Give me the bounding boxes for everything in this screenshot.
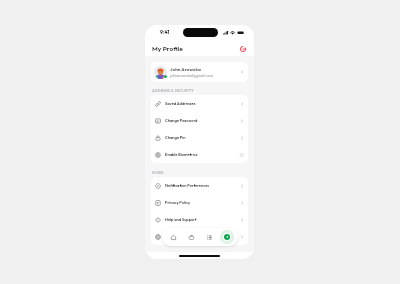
staticText: MORE: [152, 170, 164, 175]
staticText: My Profile: [152, 44, 183, 53]
staticText: Enable Biometrics: [165, 152, 198, 157]
button[interactable]: Enable Biometrics: [151, 146, 248, 163]
button[interactable]: Enable biometrics toggle: [236, 153, 244, 157]
staticText: johnarowoka1@gmail.com: [170, 73, 214, 78]
staticText: 9:41: [160, 29, 170, 35]
button[interactable]: Transactions: [202, 230, 216, 244]
button[interactable]: Terms of Service: [151, 228, 248, 245]
staticText: Privacy Policy: [165, 200, 191, 205]
button[interactable]: Log out: [237, 43, 248, 54]
button[interactable]: Profile: [220, 230, 234, 244]
button[interactable]: Privacy Policy: [151, 194, 248, 211]
button[interactable]: Saved Addresses: [151, 95, 248, 112]
button[interactable]: Notification Preferences: [151, 177, 248, 194]
staticText: Change Pin: [165, 135, 186, 140]
button[interactable]: Change Pin: [151, 129, 248, 146]
button[interactable]: Home: [166, 230, 180, 244]
staticText: Help and Support: [165, 217, 197, 222]
button[interactable]: John Arowoka: [151, 62, 248, 82]
button[interactable]: Help and Support: [151, 211, 248, 228]
staticText: Change Password: [165, 118, 198, 123]
staticText: John Arowoka: [170, 66, 201, 72]
staticText: ADDRESS & SECURITY: [152, 88, 195, 93]
button[interactable]: Wallet: [184, 230, 198, 244]
button[interactable]: Change Password: [151, 112, 248, 129]
staticText: Saved Addresses: [165, 101, 196, 106]
staticText: Terms of Service: [165, 234, 195, 239]
staticText: Notification Preferences: [165, 183, 210, 188]
